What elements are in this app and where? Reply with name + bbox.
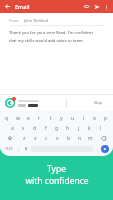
button[interactable]: b [63, 134, 74, 142]
staticText: m [88, 135, 93, 142]
staticText: b [67, 135, 71, 142]
button[interactable]: y [56, 114, 67, 122]
button[interactable]: u [67, 114, 78, 122]
button[interactable]: i [78, 114, 89, 122]
button[interactable]: Voice input [22, 144, 29, 153]
staticText: ?123 [5, 146, 13, 151]
staticText: p [104, 115, 108, 122]
staticText: x [34, 135, 37, 142]
button[interactable]: k [84, 124, 95, 132]
staticText: h [66, 125, 70, 132]
staticText: w [16, 115, 20, 122]
staticText: John Thetford [24, 18, 49, 23]
staticText: c [45, 135, 48, 142]
button[interactable]: t [45, 114, 56, 122]
staticText: o [93, 115, 97, 122]
staticText: g [55, 125, 59, 132]
staticText: k [88, 125, 91, 132]
staticText: u [71, 115, 75, 122]
button[interactable]: z [18, 134, 30, 142]
button[interactable]: p [100, 114, 111, 122]
staticText: r [38, 115, 41, 122]
button[interactable]: f [40, 124, 51, 132]
staticText: f [45, 125, 47, 132]
staticText: l [100, 125, 102, 132]
button[interactable]: j [73, 124, 84, 132]
button[interactable]: Send [101, 145, 109, 153]
staticText: . [97, 146, 99, 152]
button[interactable]: ?123 [2, 144, 16, 153]
staticText: Email [15, 3, 30, 10]
button[interactable]: n [74, 134, 85, 142]
button[interactable]: . [95, 144, 101, 153]
button[interactable]: Skip [0, 95, 113, 111]
button[interactable]: Attach [82, 2, 91, 11]
staticText: n [78, 135, 82, 142]
button[interactable]: Skip [94, 100, 103, 106]
staticText: Type [47, 163, 66, 175]
staticText: y [60, 115, 63, 122]
button[interactable]: More options [102, 3, 110, 11]
button[interactable]: d [29, 124, 40, 132]
staticText: a [11, 125, 14, 132]
button[interactable]: c [41, 134, 52, 142]
staticText: From [9, 18, 19, 23]
staticText: j [78, 125, 80, 132]
button[interactable]: x [30, 134, 41, 142]
staticText: d [33, 125, 37, 132]
button[interactable]: a [7, 124, 18, 132]
button[interactable]: Shift [2, 134, 18, 142]
staticText: Thank you for your time Brad. I'm confid… [9, 30, 93, 36]
button[interactable]: , [16, 144, 22, 153]
staticText: z [23, 135, 26, 142]
button[interactable]: h [62, 124, 73, 132]
staticText: Skip [94, 100, 103, 106]
button[interactable]: Send [92, 2, 101, 11]
staticText: t [50, 115, 52, 122]
button[interactable]: o [89, 114, 100, 122]
staticText: , [18, 146, 20, 152]
button[interactable]: e [23, 114, 34, 122]
button[interactable]: l [95, 124, 106, 132]
button[interactable]: g [51, 124, 62, 132]
button[interactable]: r [34, 114, 45, 122]
button[interactable]: Back [3, 2, 12, 11]
staticText: with confidence [25, 175, 89, 187]
staticText: e [27, 115, 30, 122]
button[interactable]: s [18, 124, 29, 132]
staticText: i [83, 115, 85, 122]
button[interactable]: v [52, 134, 63, 142]
button[interactable]: m [85, 134, 96, 142]
staticText: that my skills would add value to team. [9, 38, 84, 44]
button[interactable]: q [2, 114, 12, 122]
staticText: s [22, 125, 25, 132]
button[interactable]: Backspace [96, 134, 111, 142]
staticText: v [56, 135, 59, 142]
staticText: q [5, 115, 9, 122]
button[interactable]: w [12, 114, 23, 122]
